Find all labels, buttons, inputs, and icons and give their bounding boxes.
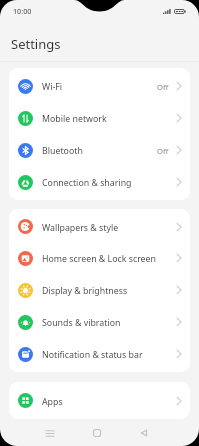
staticText: Wi-Fi [42,81,63,93]
button[interactable]: Bluetooth [9,134,190,166]
button[interactable]: Wi-Fi [9,70,190,102]
staticText: Notification & status bar [42,349,143,361]
button[interactable]: Home [84,420,110,446]
staticText: Off [157,146,169,156]
staticText: Connection & sharing [42,177,132,189]
staticText: Settings [11,35,61,53]
button[interactable]: Back [131,420,157,446]
staticText: Display & brightness [42,285,128,297]
button[interactable]: Connection & sharing [9,166,190,198]
button[interactable]: Notification & status bar [9,338,190,370]
button[interactable]: Apps [9,384,190,417]
staticText: 10:00 [13,6,32,16]
button[interactable]: Wallpapers & style [9,211,190,242]
staticText: Off [157,82,169,92]
button[interactable]: Home screen & Lock screen [9,242,190,274]
button[interactable]: Mobile network [9,102,190,134]
staticText: Mobile network [42,113,107,125]
staticText: Sounds & vibration [42,317,121,329]
button[interactable]: Sounds & vibration [9,306,190,338]
staticText: Apps [42,396,63,408]
button[interactable]: Recents [37,420,63,446]
staticText: Home screen & Lock screen [42,253,156,265]
staticText: Wallpapers & style [42,222,119,234]
button[interactable]: Display & brightness [9,274,190,306]
staticText: Bluetooth [42,145,83,157]
